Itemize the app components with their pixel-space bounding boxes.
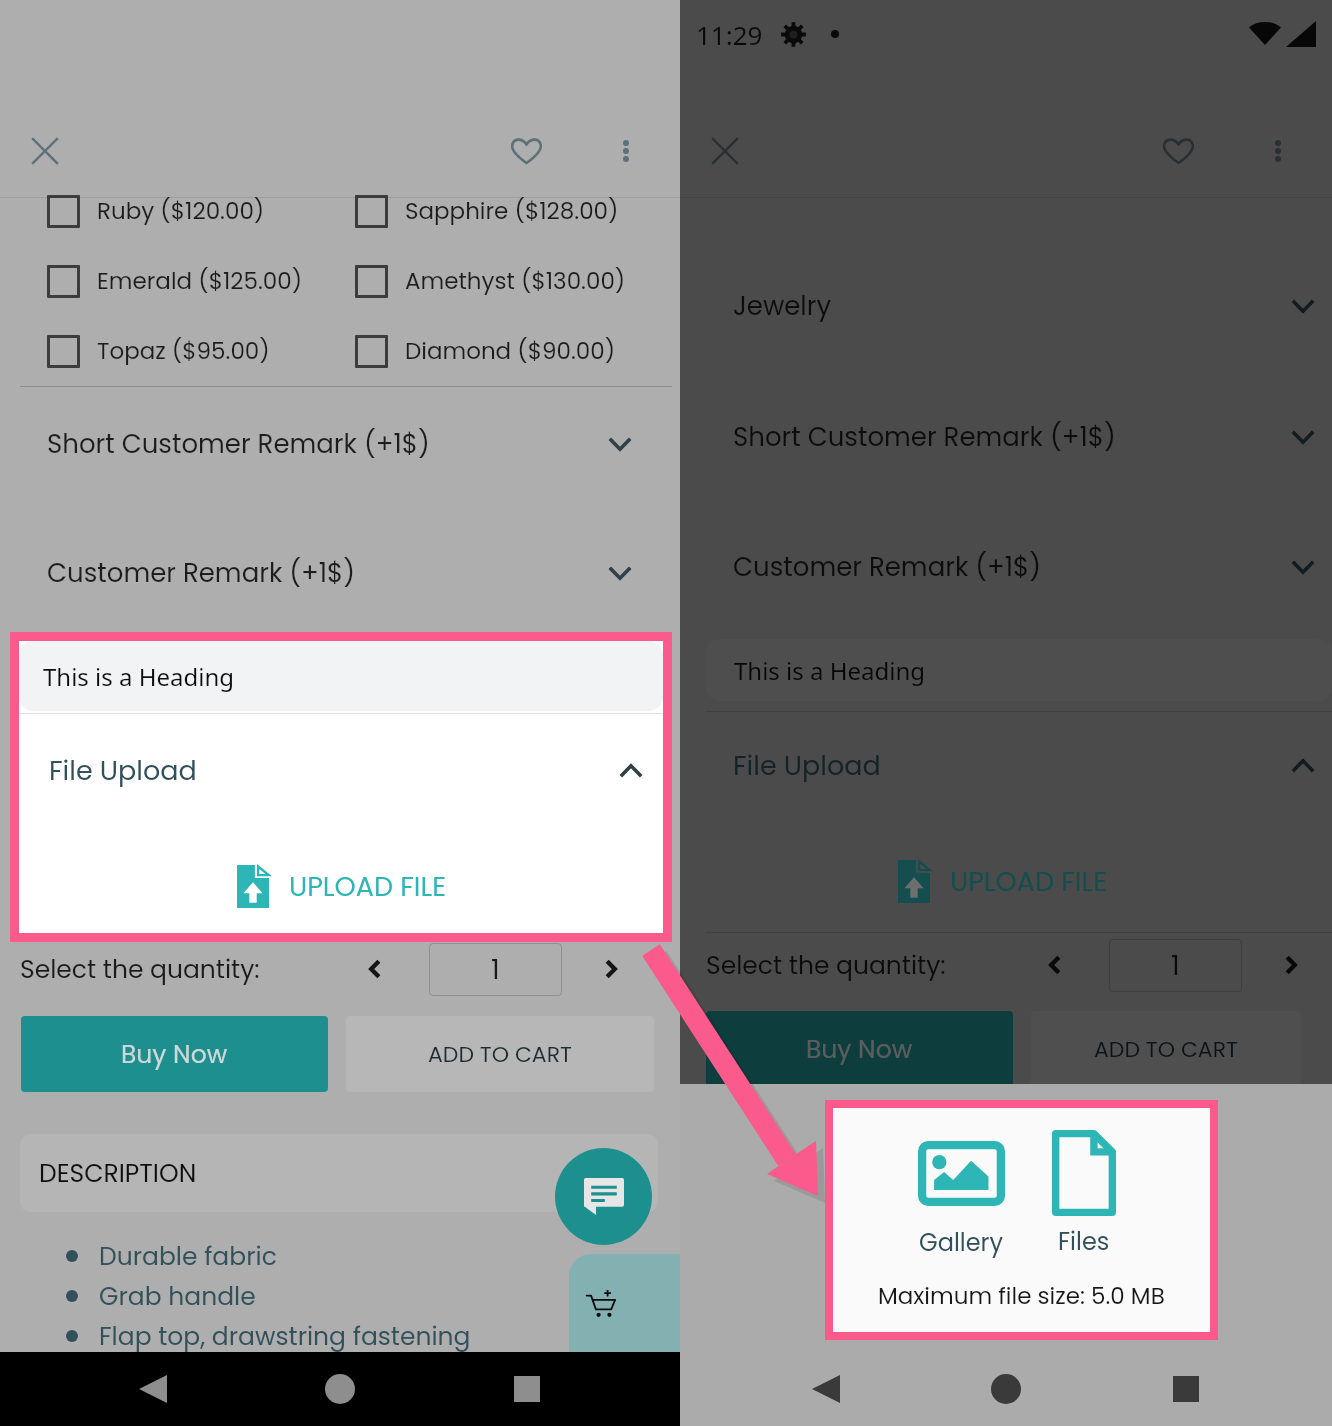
button[interactable]: File Upload [733,728,1325,804]
staticText: Diamond ($90.00) [405,335,616,367]
button[interactable]: Customer Remark (+1$) [47,543,680,603]
staticText: Buy Now [121,1037,228,1072]
button[interactable]: Emerald ($125.00) [47,264,303,298]
staticText: 1 [1171,947,1180,985]
staticText: This is a Heading [43,660,235,693]
button[interactable]: Home [972,1355,1040,1423]
button[interactable]: Home [306,1355,374,1423]
staticText: Flap top, drawstring fastening [99,1319,471,1354]
staticText: UPLOAD FILE [950,863,1108,901]
button[interactable]: Jewelry [733,276,1325,336]
button[interactable]: Favorite [498,123,554,179]
button[interactable]: ADD TO CART [1031,1011,1301,1084]
button[interactable]: Short Customer Remark (+1$) [733,407,1325,467]
staticText: 11:29 [696,17,763,52]
button[interactable]: Increase quantity [1263,937,1319,993]
button[interactable]: Ruby ($120.00) [47,194,265,228]
staticText: Emerald ($125.00) [97,265,303,297]
button[interactable]: Close [17,123,73,179]
staticText: Jewelry [733,288,832,324]
staticText: Short Customer Remark (+1$) [47,426,430,462]
button[interactable]: Recent apps [493,1355,561,1423]
staticText: Select the quantity: [706,948,946,983]
button[interactable]: Buy Now [21,1016,328,1092]
button[interactable]: UPLOAD FILE [231,859,453,914]
staticText: DESCRIPTION [39,1156,197,1191]
button[interactable]: Buy Now [706,1011,1013,1084]
staticText: 1 [491,951,500,989]
staticText: Files [1058,1225,1110,1259]
button[interactable]: Decrease quantity [1027,937,1083,993]
button[interactable]: Back [792,1355,860,1423]
staticText: Customer Remark (+1$) [733,549,1042,585]
staticText: ADD TO CART [428,1039,572,1070]
staticText: Customer Remark (+1$) [47,555,356,591]
staticText: Ruby ($120.00) [97,195,265,227]
button[interactable]: Add to cart [569,1254,680,1352]
staticText: This is a Heading [734,654,926,687]
button[interactable]: Amethyst ($130.00) [355,264,626,298]
button[interactable]: Recent apps [1152,1355,1220,1423]
button[interactable]: DESCRIPTION [20,1134,658,1212]
staticText: Amethyst ($130.00) [405,265,626,297]
staticText: Select the quantity: [20,952,260,987]
staticText: File Upload [49,752,197,790]
button[interactable]: Chat [555,1148,652,1245]
button[interactable]: Gallery [899,1126,1023,1264]
button[interactable]: Customer Remark (+1$) [733,537,1325,597]
button[interactable]: More options [1250,123,1306,179]
button[interactable]: UPLOAD FILE [892,854,1114,909]
button[interactable]: Favorite [1150,123,1206,179]
staticText: ADD TO CART [1094,1034,1238,1065]
button[interactable]: Increase quantity [583,941,639,997]
staticText: Short Customer Remark (+1$) [733,419,1116,455]
button[interactable]: Close [697,123,753,179]
staticText: Gallery [919,1226,1004,1260]
staticText: File Upload [733,747,881,785]
staticText: Buy Now [806,1032,913,1067]
staticText: Topaz ($95.00) [97,335,270,367]
staticText: Grab handle [99,1279,256,1314]
button[interactable]: Decrease quantity [347,941,403,997]
button[interactable]: Diamond ($90.00) [355,334,616,368]
staticText: Maximum file size: 5.0 MB [878,1280,1165,1312]
staticText: Durable fabric [99,1239,277,1274]
button[interactable]: File Upload [19,725,663,817]
button[interactable]: ADD TO CART [346,1016,654,1092]
button[interactable]: Files [1034,1126,1134,1263]
staticText: UPLOAD FILE [289,868,447,906]
staticText: Sapphire ($128.00) [405,195,619,227]
button[interactable]: Short Customer Remark (+1$) [47,414,680,474]
button[interactable]: Sapphire ($128.00) [355,194,619,228]
button[interactable]: Back [119,1355,187,1423]
button[interactable]: Topaz ($95.00) [47,334,270,368]
button[interactable]: More options [598,123,654,179]
